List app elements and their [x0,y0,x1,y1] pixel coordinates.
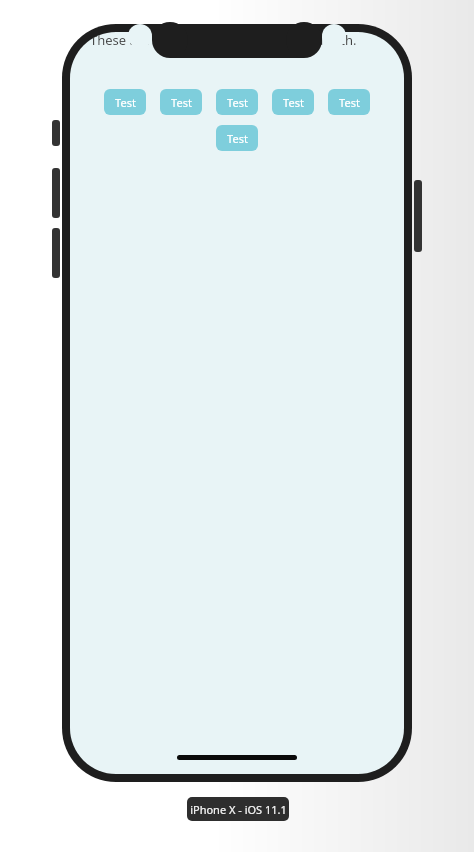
button[interactable]: Test [216,89,258,115]
staticText: Test [227,131,248,146]
button[interactable]: Test [104,89,146,115]
button[interactable]: Test [272,89,314,115]
staticText: Test [227,95,248,110]
button[interactable]: Test [160,89,202,115]
staticText: Test [339,95,360,110]
button[interactable]: Device: iPhone X - iOS 11.1 [187,797,289,821]
button[interactable]: Test [216,125,258,151]
staticText: Test [115,95,136,110]
staticText: Test [283,95,304,110]
staticText: iPhone X - iOS 11.1 [190,802,287,817]
staticText: These are some chips we can help you wit… [90,32,390,49]
staticText: Test [171,95,192,110]
button[interactable]: Test [328,89,370,115]
